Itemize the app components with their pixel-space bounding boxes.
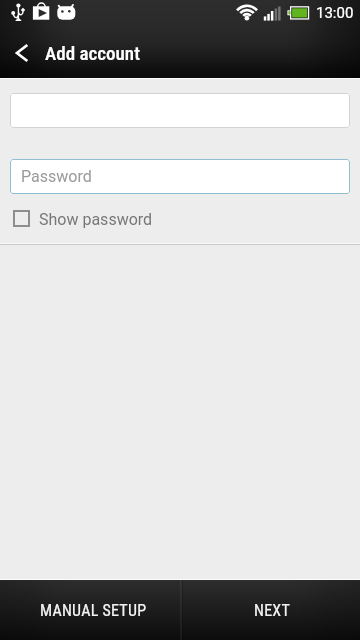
button[interactable]: Show password xyxy=(0,194,360,243)
other: Back xyxy=(15,43,29,63)
button[interactable]: NEXT xyxy=(183,579,360,640)
button[interactable] xyxy=(10,93,350,128)
staticText: NEXT xyxy=(254,601,291,620)
button[interactable]: Password xyxy=(10,159,350,194)
button[interactable]: Back xyxy=(0,26,360,79)
staticText: Password xyxy=(21,167,92,186)
staticText: Add account xyxy=(45,42,140,64)
staticText: MANUAL SETUP xyxy=(40,601,147,620)
staticText: 13:00 xyxy=(316,4,354,22)
button[interactable]: MANUAL SETUP xyxy=(0,579,180,640)
staticText: Show password xyxy=(39,210,153,229)
